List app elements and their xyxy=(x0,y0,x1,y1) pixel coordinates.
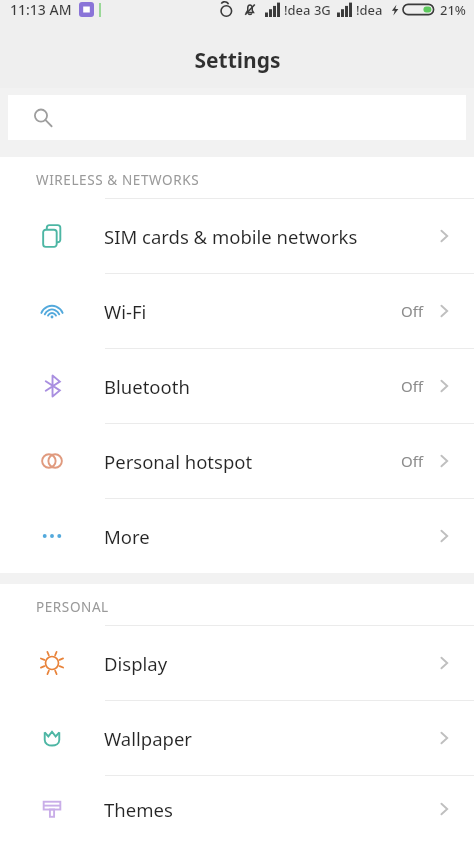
button[interactable]: Themes xyxy=(0,776,474,842)
staticText: Wi-Fi xyxy=(104,299,401,324)
staticText: 11:13 AM xyxy=(10,0,72,19)
staticText: Bluetooth xyxy=(104,374,401,399)
button[interactable]: Personal hotspot xyxy=(0,424,474,498)
button[interactable]: Wi-Fi xyxy=(0,274,474,348)
staticText: Personal hotspot xyxy=(104,449,401,474)
button[interactable] xyxy=(8,95,466,140)
staticText: Settings xyxy=(194,46,281,75)
staticText: 21% xyxy=(440,1,466,19)
staticText: PERSONAL xyxy=(36,598,109,616)
staticText: Off xyxy=(401,451,424,471)
staticText: SIM cards & mobile networks xyxy=(104,224,436,249)
button[interactable]: Bluetooth xyxy=(0,349,474,423)
staticText: Wallpaper xyxy=(104,726,436,751)
button[interactable]: More xyxy=(0,499,474,573)
staticText: More xyxy=(104,524,436,549)
staticText: Themes xyxy=(104,797,436,822)
staticText: !dea xyxy=(356,1,383,19)
staticText: WIRELESS & NETWORKS xyxy=(36,171,200,189)
staticText: !dea 3G xyxy=(284,1,331,19)
button[interactable]: Wallpaper xyxy=(0,701,474,775)
staticText: Display xyxy=(104,651,436,676)
staticText: Off xyxy=(401,376,424,396)
button[interactable]: Display xyxy=(0,626,474,700)
staticText: Off xyxy=(401,301,424,321)
button[interactable]: SIM cards & mobile networks xyxy=(0,199,474,273)
